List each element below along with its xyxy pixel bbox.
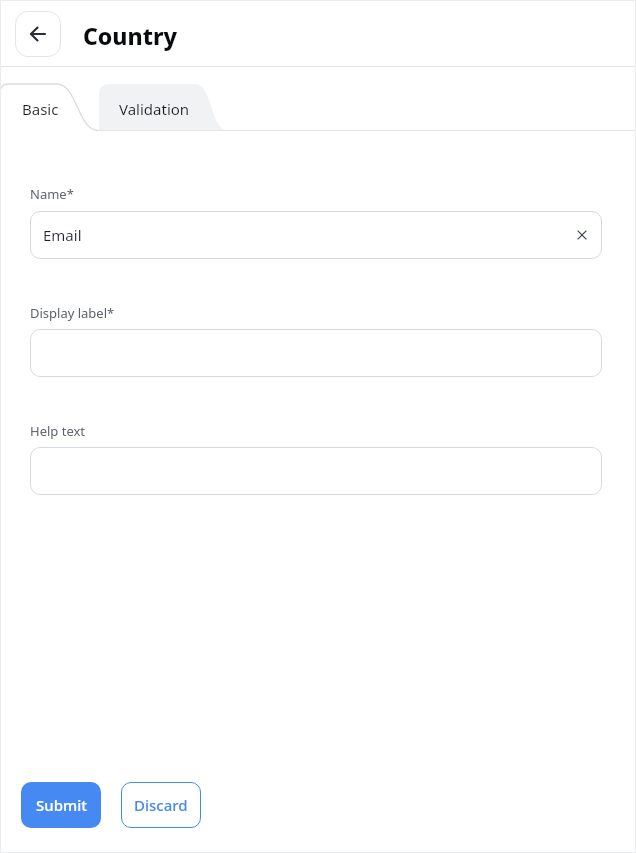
button[interactable] <box>30 329 602 377</box>
button[interactable]: Email <box>30 211 602 259</box>
button[interactable] <box>30 447 602 495</box>
button[interactable] <box>15 11 61 57</box>
staticText: Name* <box>30 185 74 203</box>
button[interactable]: Validation <box>99 84 228 131</box>
staticText: Submit <box>36 795 87 815</box>
staticText: Validation <box>119 99 190 119</box>
staticText: Help text <box>30 422 86 440</box>
staticText: Display label* <box>30 304 115 322</box>
staticText: Country <box>83 20 177 51</box>
button[interactable]: Basic <box>0 84 97 131</box>
staticText: Email <box>43 225 82 245</box>
button[interactable]: Submit <box>21 782 101 828</box>
staticText: Basic <box>22 99 59 119</box>
button[interactable]: Discard <box>121 782 201 828</box>
staticText: Discard <box>134 795 188 815</box>
